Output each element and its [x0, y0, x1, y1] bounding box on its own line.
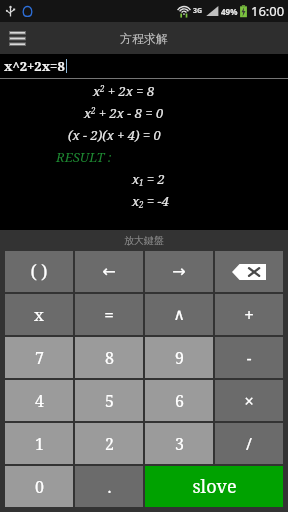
button[interactable]: 3: [145, 423, 213, 464]
staticText: RESULT :: [56, 148, 112, 166]
button[interactable]: /: [215, 423, 283, 464]
button[interactable]: Backspace: [215, 251, 283, 292]
staticText: 6: [175, 390, 184, 412]
button[interactable]: 2: [75, 423, 143, 464]
staticText: x^2+2x=8: [4, 57, 65, 75]
button[interactable]: ×: [215, 380, 283, 421]
staticText: -: [246, 347, 252, 369]
staticText: ∧: [173, 305, 185, 324]
button[interactable]: 6: [145, 380, 213, 421]
staticText: =: [104, 304, 114, 326]
staticText: .: [107, 476, 112, 498]
button[interactable]: -: [215, 337, 283, 378]
button[interactable]: 0: [5, 466, 73, 507]
staticText: x: [34, 303, 44, 326]
staticText: 1: [35, 433, 44, 455]
button[interactable]: .: [75, 466, 143, 507]
staticText: 8: [105, 347, 114, 369]
staticText: (x − 2)(x + 4) = 0: [68, 126, 161, 144]
button[interactable]: ∧: [145, 294, 213, 335]
staticText: ×: [244, 390, 254, 412]
staticText: x2 + 2x − 8 = 0: [84, 104, 164, 122]
button[interactable]: 9: [145, 337, 213, 378]
staticText: 方程求解: [120, 31, 168, 46]
staticText: 5: [105, 390, 114, 412]
staticText: 3: [175, 433, 184, 455]
button[interactable]: ( ): [5, 251, 73, 292]
button[interactable]: x^2+2x=8: [0, 54, 288, 78]
staticText: ( ): [30, 259, 48, 284]
staticText: 7: [35, 347, 44, 369]
staticText: 4: [35, 390, 44, 412]
staticText: 3G: [193, 6, 203, 16]
button[interactable]: 5: [75, 380, 143, 421]
button[interactable]: slove: [145, 466, 283, 507]
button[interactable]: +: [215, 294, 283, 335]
button[interactable]: →: [145, 251, 213, 292]
staticText: /: [246, 433, 252, 455]
button[interactable]: 7: [5, 337, 73, 378]
staticText: x2 + 2x = 8: [93, 82, 155, 100]
staticText: x1 = 2: [132, 170, 165, 188]
button[interactable]: x: [5, 294, 73, 335]
button[interactable]: 4: [5, 380, 73, 421]
staticText: ←: [102, 262, 116, 281]
staticText: 放大鍵盤: [124, 234, 164, 247]
staticText: →: [172, 262, 186, 281]
staticText: 0: [35, 476, 44, 498]
staticText: x2 = −4: [132, 192, 169, 210]
staticText: 9: [175, 347, 184, 369]
button[interactable]: 8: [75, 337, 143, 378]
staticText: +: [244, 304, 254, 326]
button[interactable]: Menu: [0, 22, 34, 54]
staticText: 16:00: [251, 2, 285, 20]
staticText: slove: [192, 474, 237, 499]
staticText: 49%: [221, 6, 238, 17]
staticText: 2: [105, 433, 114, 455]
button[interactable]: =: [75, 294, 143, 335]
button[interactable]: ←: [75, 251, 143, 292]
button[interactable]: 1: [5, 423, 73, 464]
